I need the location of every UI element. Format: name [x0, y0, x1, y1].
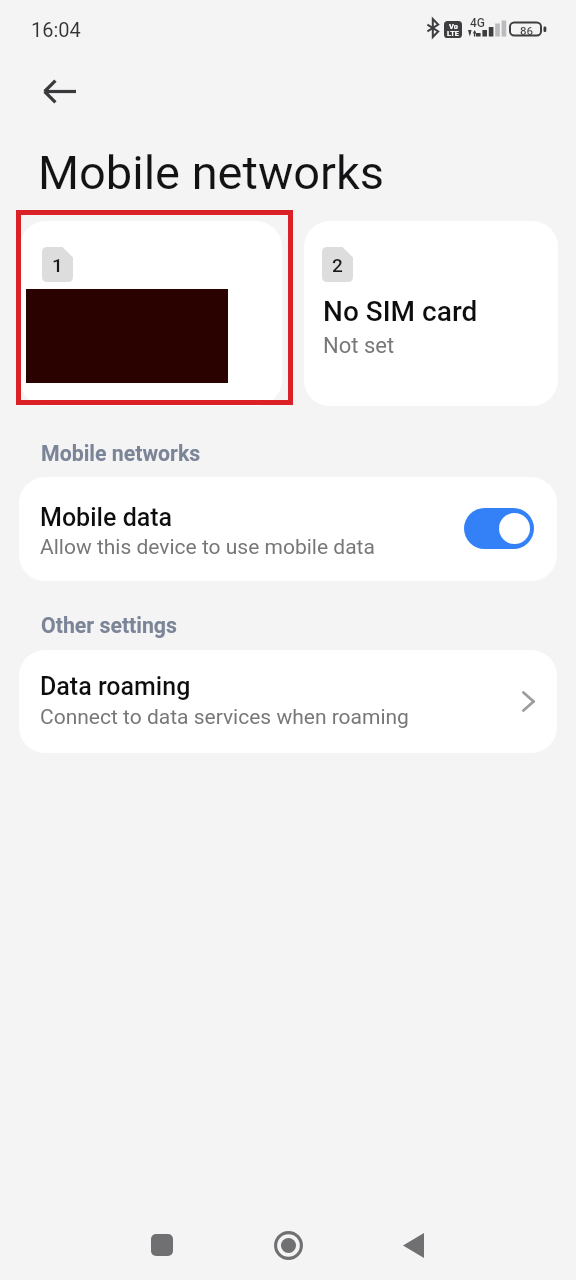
staticText: Data roaming	[40, 672, 191, 701]
staticText: Mobile networks	[41, 441, 201, 466]
staticText: Connect to data services when roaming	[40, 705, 409, 730]
button[interactable]: 1	[20, 221, 282, 406]
button[interactable]: Back	[382, 1214, 444, 1276]
staticText: Mobile data	[40, 503, 173, 532]
staticText: 2	[332, 254, 343, 276]
staticText: Other settings	[41, 613, 177, 638]
button[interactable]: Recent apps	[131, 1214, 193, 1276]
button[interactable]: 2	[304, 221, 558, 406]
button[interactable]: Mobile data	[19, 477, 557, 581]
staticText: 1	[52, 254, 63, 276]
staticText: 86	[520, 24, 534, 37]
staticText: No SIM card	[323, 295, 478, 328]
staticText: LTE	[447, 29, 459, 38]
button[interactable]: Mobile data toggle	[464, 508, 534, 549]
staticText: 16:04	[31, 18, 81, 41]
staticText: Vo	[449, 22, 458, 31]
staticText: Not set	[323, 333, 395, 359]
staticText: Allow this device to use mobile data	[40, 535, 375, 560]
button[interactable]: Home	[257, 1214, 319, 1276]
button[interactable]: Data roaming	[19, 650, 557, 753]
staticText: Mobile networks	[38, 145, 385, 200]
button[interactable]: Back	[35, 67, 83, 115]
staticText: 4G	[470, 16, 485, 30]
